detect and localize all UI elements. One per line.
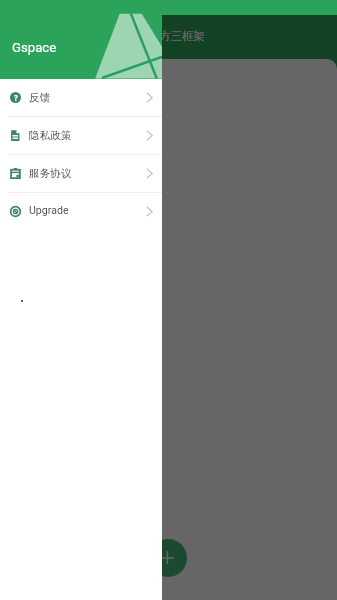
staticText: 服务协议 xyxy=(29,167,72,180)
button[interactable]: 隐私政策 xyxy=(0,117,162,154)
staticText: 隐私政策 xyxy=(29,129,72,142)
staticText: Upgrade xyxy=(29,204,69,216)
button[interactable]: Upgrade xyxy=(0,193,162,230)
button[interactable] xyxy=(162,15,337,600)
button[interactable]: Add xyxy=(149,539,187,577)
staticText: Gspace xyxy=(12,40,57,55)
button[interactable]: 服务协议 xyxy=(0,155,162,192)
staticText: 反馈 xyxy=(29,91,51,104)
staticText: 官方三框架 xyxy=(148,29,205,43)
staticText: ? xyxy=(14,92,18,103)
button[interactable]: ? xyxy=(0,79,162,116)
